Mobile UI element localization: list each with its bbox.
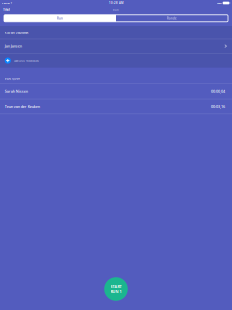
staticText: Run xyxy=(57,16,63,20)
staticText: 10:28 AM xyxy=(109,1,123,5)
staticText: START RUN 1 xyxy=(110,284,121,294)
staticText: Sarah Nissen xyxy=(5,89,28,94)
staticText: 00:00,04 xyxy=(211,89,225,94)
button[interactable]: Run xyxy=(4,15,116,22)
staticText: Jan Jansen xyxy=(5,44,22,49)
button[interactable]: Sarah Nissen xyxy=(0,84,232,99)
staticText: Titel xyxy=(3,7,10,12)
staticText: 100% xyxy=(217,1,222,5)
staticText: Teun van der Keuken xyxy=(5,104,40,109)
button[interactable]: START RUN 1 xyxy=(104,277,128,301)
staticText: KIES EEN DEELNEMER xyxy=(5,31,29,34)
staticText: ▾ xyxy=(10,2,12,4)
button[interactable]: Teun van der Keuken xyxy=(0,99,232,114)
staticText: 00:03,16 xyxy=(211,104,225,109)
button[interactable]: Jan Jansen xyxy=(0,39,232,53)
staticText: Ronde xyxy=(167,16,177,20)
staticText: Run xyxy=(113,8,119,11)
staticText: LEERLING TOEVOEGEN xyxy=(14,59,39,62)
staticText: Carrier xyxy=(2,1,10,5)
staticText: BESTE TIJDEN xyxy=(5,77,20,80)
button[interactable]: Ronde xyxy=(116,15,228,22)
button[interactable]: LEERLING TOEVOEGEN xyxy=(0,53,232,68)
